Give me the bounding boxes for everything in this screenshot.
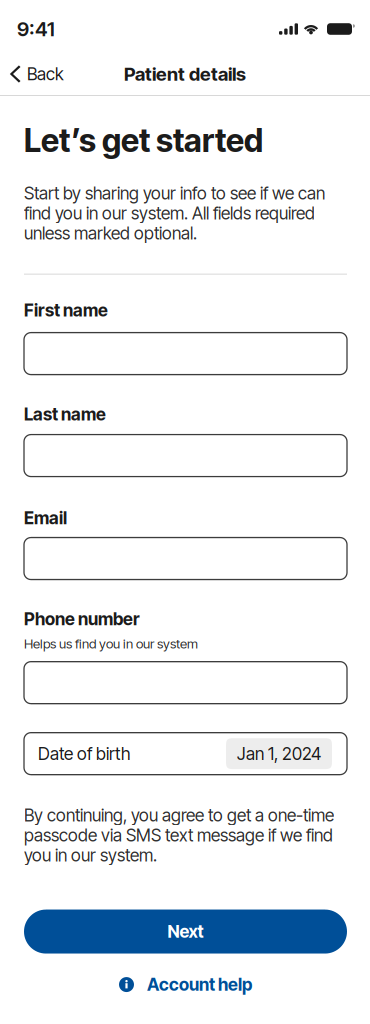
staticText: Back	[27, 63, 64, 84]
button[interactable]: Account help	[24, 968, 347, 1002]
staticText: Account help	[147, 974, 252, 995]
button[interactable]: Date of birth	[24, 733, 347, 775]
staticText: First name	[24, 300, 108, 321]
staticText: Last name	[24, 404, 106, 425]
staticText: Jan 1, 2024	[237, 743, 321, 764]
button[interactable]: Next	[24, 910, 347, 954]
button[interactable]	[24, 425, 347, 477]
staticText: 9:41	[17, 17, 55, 41]
staticText: By continuing, you agree to get a one-ti…	[24, 805, 334, 866]
button[interactable]	[24, 652, 347, 704]
staticText: Start by sharing your info to see if we …	[24, 183, 325, 244]
button[interactable]	[24, 321, 347, 375]
staticText: Let’s get started	[24, 121, 263, 160]
staticText: Next	[167, 921, 203, 942]
staticText: Patient details	[124, 63, 246, 85]
staticText: Date of birth	[38, 743, 130, 764]
staticText: Email	[24, 508, 67, 529]
button[interactable]	[24, 528, 347, 579]
staticText: Helps us find you in our system	[24, 635, 198, 652]
button[interactable]: Back	[0, 52, 74, 96]
staticText: Phone number	[24, 608, 140, 629]
